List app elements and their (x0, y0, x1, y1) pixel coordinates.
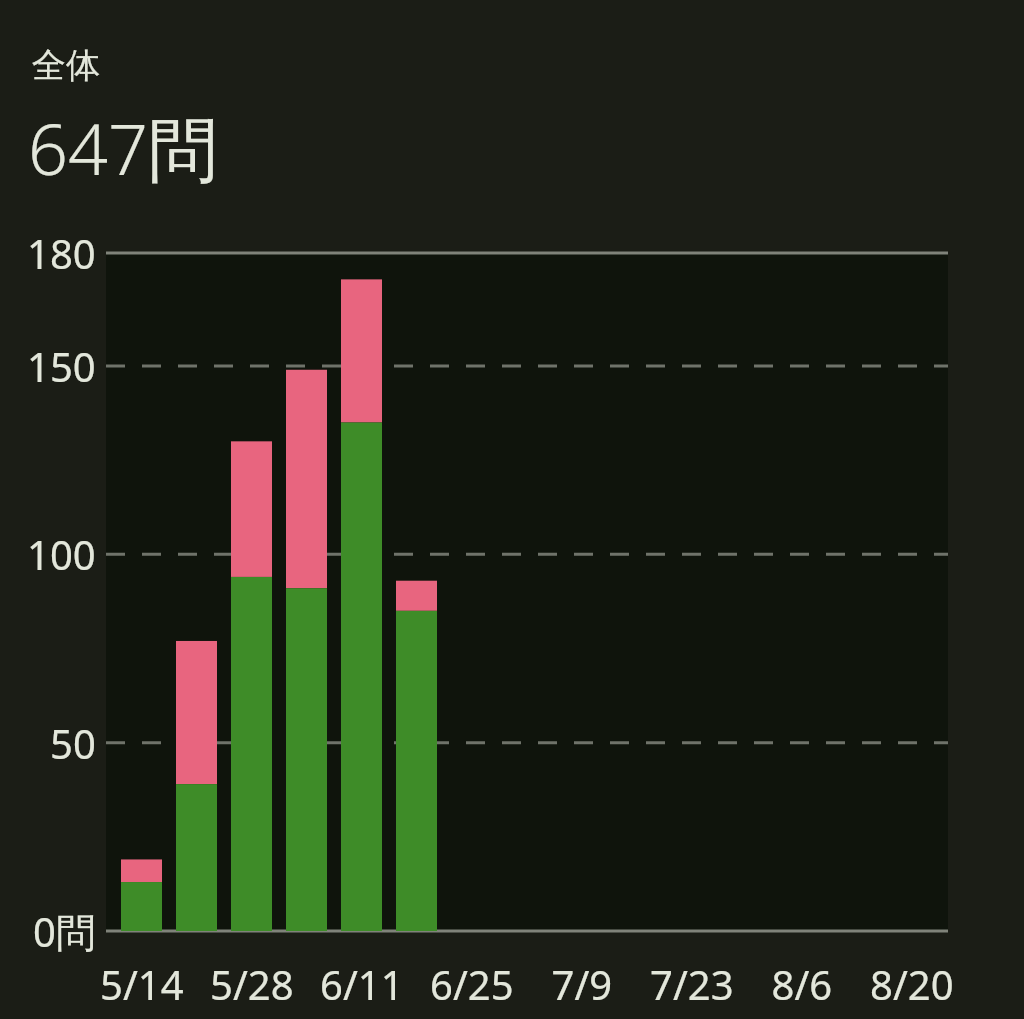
button[interactable]: Overall questions bar chart (0, 0, 1024, 1019)
